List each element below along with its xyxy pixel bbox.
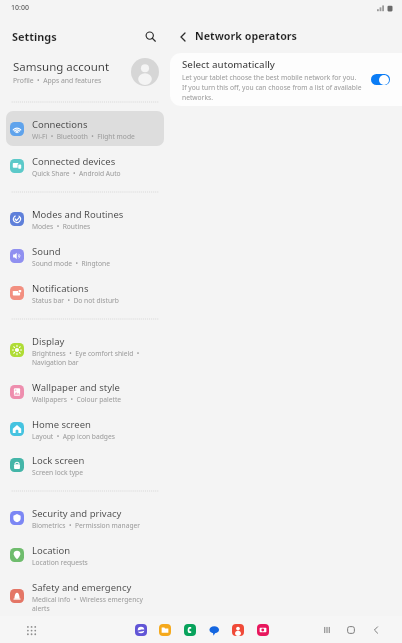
staticText: Biometrics • Permission manager xyxy=(32,521,141,530)
button[interactable]: Select automatically toggle xyxy=(371,74,390,85)
staticText: Medical info • Wireless emergency alerts xyxy=(32,595,143,613)
button[interactable]: Samsung account xyxy=(0,50,170,94)
staticText: 10:00 xyxy=(11,3,29,13)
button[interactable]: Lock screen xyxy=(6,447,164,482)
staticText: Sound mode • Ringtone xyxy=(32,259,110,268)
button[interactable]: My Files xyxy=(159,624,171,636)
button[interactable]: Safety and emergency xyxy=(6,574,164,618)
button[interactable]: Home xyxy=(344,623,358,637)
button[interactable]: Internet xyxy=(135,624,147,636)
button[interactable]: Messages xyxy=(208,624,220,636)
staticText: Samsung account xyxy=(13,59,110,75)
staticText: Lock screen xyxy=(32,454,85,467)
staticText: Location xyxy=(32,544,71,557)
staticText: Brightness • Eye comfort shield • Naviga… xyxy=(32,349,140,367)
staticText: Wi-Fi • Bluetooth • Flight mode xyxy=(32,132,135,141)
staticText: Wallpaper and style xyxy=(32,381,120,394)
button[interactable]: Back xyxy=(174,28,191,45)
staticText: Layout • App icon badges xyxy=(32,432,115,441)
button[interactable]: Sound xyxy=(6,238,164,273)
staticText: Display xyxy=(32,335,65,348)
staticText: Wallpapers • Colour palette xyxy=(32,395,122,404)
staticText: Let your tablet choose the best mobile n… xyxy=(182,73,362,102)
staticText: Profile • Apps and features xyxy=(13,76,102,85)
staticText: Notifications xyxy=(32,282,89,295)
button[interactable]: Modes and Routines xyxy=(6,201,164,236)
staticText: Screen lock type xyxy=(32,468,83,477)
staticText: Settings xyxy=(12,29,57,44)
staticText: Select automatically xyxy=(182,58,275,71)
staticText: Quick Share • Android Auto xyxy=(32,169,121,178)
staticText: Connected devices xyxy=(32,155,116,168)
staticText: Network operators xyxy=(195,29,297,44)
staticText: Connections xyxy=(32,118,88,131)
staticText: Home screen xyxy=(32,418,91,431)
button[interactable]: Search xyxy=(140,26,160,46)
staticText: Location requests xyxy=(32,558,88,567)
button[interactable]: Connections xyxy=(6,111,164,146)
staticText: Safety and emergency xyxy=(32,581,132,594)
staticText: Modes and Routines xyxy=(32,208,124,221)
button[interactable]: Location xyxy=(6,537,164,572)
button[interactable]: Select automatically xyxy=(170,53,402,106)
button[interactable]: Connected devices xyxy=(6,148,164,183)
button[interactable]: Home screen xyxy=(6,411,164,446)
button[interactable]: Wallpaper and style xyxy=(6,374,164,409)
staticText: Sound xyxy=(32,245,61,258)
button[interactable]: Recents xyxy=(320,623,334,637)
staticText: Modes • Routines xyxy=(32,222,91,231)
button[interactable]: Camera xyxy=(257,624,269,636)
button[interactable]: Display xyxy=(6,328,164,372)
button[interactable]: Back xyxy=(369,623,383,637)
button[interactable]: Contacts xyxy=(232,624,244,636)
staticText: Status bar • Do not disturb xyxy=(32,296,119,305)
button[interactable]: Apps xyxy=(23,622,39,638)
staticText: Security and privacy xyxy=(32,507,122,520)
button[interactable]: Notifications xyxy=(6,275,164,310)
button[interactable]: Phone xyxy=(184,624,196,636)
button[interactable]: Security and privacy xyxy=(6,500,164,535)
